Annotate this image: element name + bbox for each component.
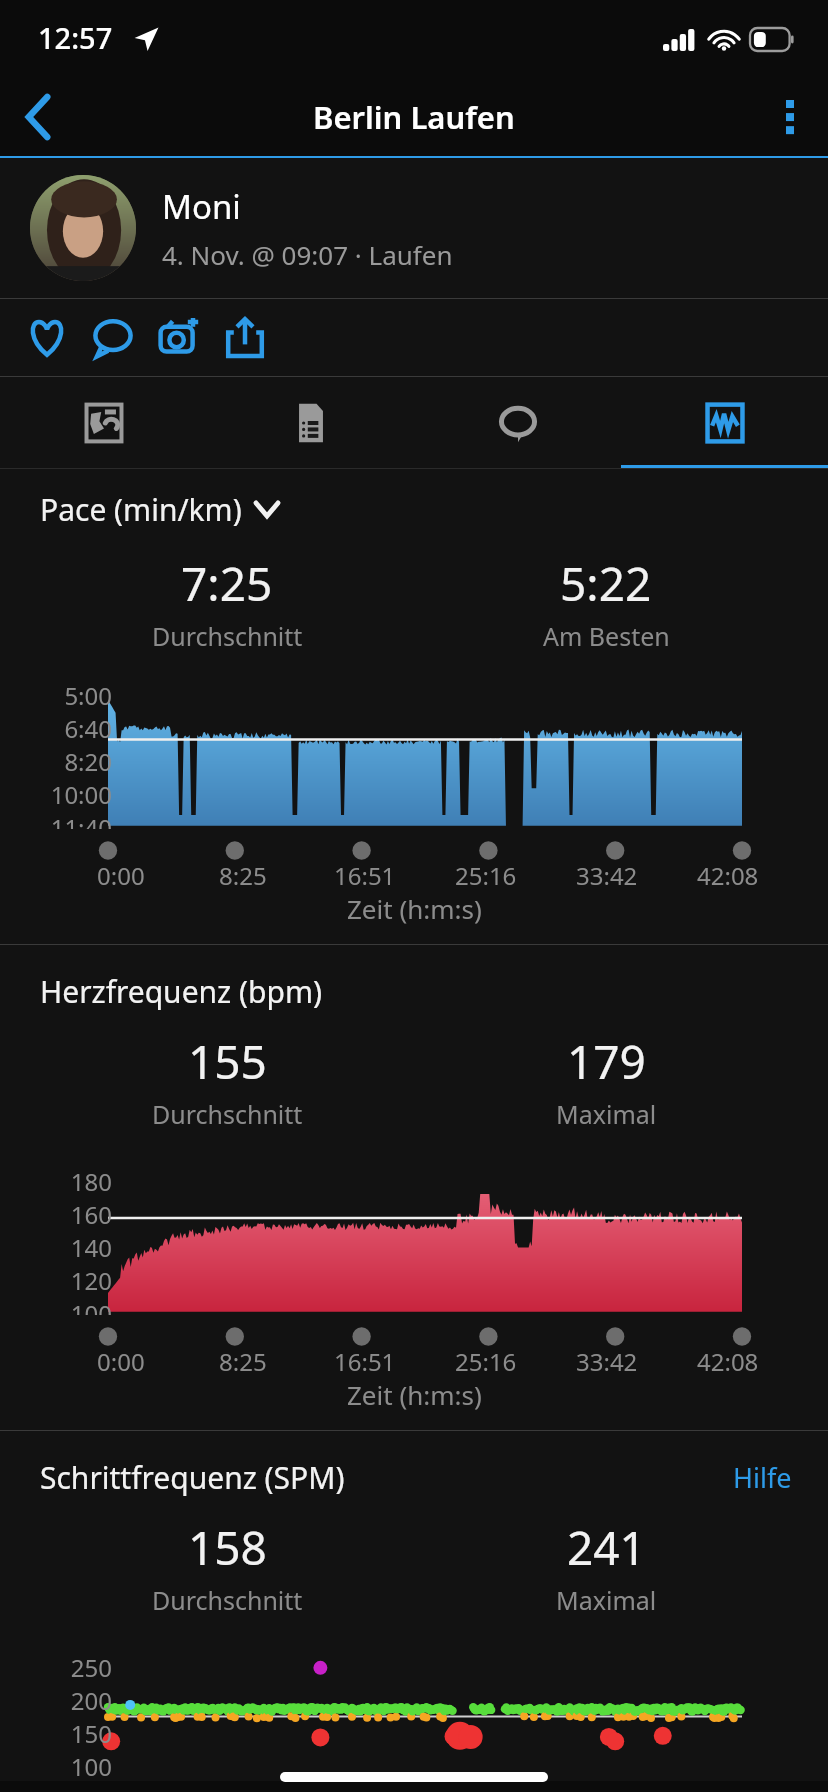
button[interactable]: Herzfrequenz (bpm) — [40, 971, 322, 1012]
staticText: Zeit (h:m:s) — [347, 891, 482, 926]
button[interactable]: More options — [752, 79, 828, 155]
staticText: Berlin Laufen — [313, 96, 515, 138]
staticText: 33:42 — [576, 859, 638, 892]
button[interactable]: Schrittfrequenz (SPM) — [40, 1457, 345, 1498]
staticText: Durchschnitt — [152, 1097, 303, 1131]
staticText: 250 — [70, 1651, 112, 1684]
button[interactable]: Map — [0, 377, 207, 469]
staticText: 6:40 — [64, 712, 112, 745]
button[interactable]: Laps — [414, 377, 621, 469]
staticText: Herzfrequenz (bpm) — [40, 971, 322, 1012]
staticText: Maximal — [556, 1583, 657, 1617]
staticText: 42:08 — [697, 1345, 759, 1378]
staticText: 5:22 — [560, 552, 652, 615]
button[interactable]: Share — [212, 305, 278, 371]
staticText: 8:25 — [219, 859, 267, 892]
staticText: 100 — [70, 1750, 112, 1779]
staticText: 120 — [70, 1264, 112, 1297]
staticText: 7:25 — [181, 552, 273, 615]
staticText: 25:16 — [455, 859, 517, 892]
staticText: 179 — [567, 1030, 646, 1093]
staticText: 155 — [188, 1030, 267, 1093]
staticText: Am Besten — [543, 619, 670, 653]
staticText: 42:08 — [697, 859, 759, 892]
staticText: 160 — [70, 1198, 112, 1231]
staticText: 241 — [567, 1516, 646, 1579]
staticText: 158 — [188, 1516, 267, 1579]
button[interactable]: Comment — [80, 305, 146, 371]
staticText: Pace (min/km) — [40, 489, 242, 530]
staticText: Moni — [162, 184, 241, 229]
staticText: 180 — [70, 1165, 112, 1198]
staticText: 5:00 — [64, 679, 112, 712]
staticText: 16:51 — [334, 859, 396, 892]
staticText: 16:51 — [334, 1345, 396, 1378]
staticText: 8:20 — [64, 745, 112, 778]
staticText: Durchschnitt — [152, 619, 303, 653]
staticText: 150 — [70, 1717, 112, 1750]
button[interactable]: Pace (min/km) — [40, 489, 278, 530]
staticText: 8:25 — [219, 1345, 267, 1378]
staticText: 33:42 — [576, 1345, 638, 1378]
button[interactable]: Back — [0, 79, 76, 155]
staticText: 0:00 — [97, 859, 145, 892]
staticText: Hilfe — [733, 1459, 792, 1496]
button[interactable]: Hilfe — [733, 1459, 792, 1496]
staticText: 25:16 — [455, 1345, 517, 1378]
staticText: Maximal — [556, 1097, 657, 1131]
staticText: Zeit (h:m:s) — [347, 1377, 482, 1412]
button[interactable]: Moni — [0, 158, 828, 298]
staticText: 140 — [70, 1231, 112, 1264]
button[interactable]: Charts — [621, 377, 828, 469]
staticText: 4. Nov. @ 09:07 · Laufen — [162, 237, 453, 272]
staticText: 200 — [70, 1684, 112, 1717]
staticText: 11:40 — [50, 811, 112, 829]
staticText: Schrittfrequenz (SPM) — [40, 1457, 345, 1498]
button[interactable]: Like — [14, 305, 80, 371]
button[interactable]: Details — [207, 377, 414, 469]
staticText: 0:00 — [97, 1345, 145, 1378]
staticText: 12:57 — [38, 18, 113, 57]
staticText: Durchschnitt — [152, 1583, 303, 1617]
staticText: 10:00 — [50, 778, 112, 811]
button[interactable]: Add photo — [146, 305, 212, 371]
staticText: 100 — [70, 1297, 112, 1315]
